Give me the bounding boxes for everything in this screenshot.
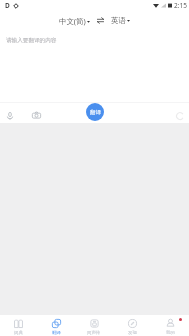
staticText: D (5, 1, 10, 10)
button[interactable]: 发现 (113, 315, 151, 336)
button[interactable]: 翻译 (86, 103, 104, 121)
button[interactable]: 请输入要翻译的内容 (0, 28, 189, 102)
button[interactable]: 我的 (151, 315, 189, 336)
button[interactable]: 词典 (0, 315, 37, 336)
button[interactable]: History (174, 110, 185, 121)
button[interactable]: Camera (31, 110, 42, 121)
staticText: 翻译 (52, 330, 61, 336)
button[interactable]: Voice input (4, 110, 15, 121)
staticText: 英语 (111, 16, 126, 25)
staticText: 请输入要翻译的内容 (6, 37, 57, 44)
staticText: 发现 (128, 330, 137, 336)
staticText: 我的 (166, 330, 175, 336)
button[interactable]: 中文(简) (58, 16, 91, 26)
staticText: 2:15 (174, 1, 187, 10)
button[interactable]: 翻译 (37, 315, 75, 336)
button[interactable]: 同声传 (75, 315, 113, 336)
button[interactable]: Swap languages (95, 15, 106, 26)
staticText: 同声传 (87, 330, 101, 336)
button[interactable]: 英语 (110, 16, 131, 25)
staticText: 中文(简) (59, 16, 86, 26)
staticText: 翻译 (90, 109, 101, 116)
staticText: 词典 (14, 330, 23, 336)
